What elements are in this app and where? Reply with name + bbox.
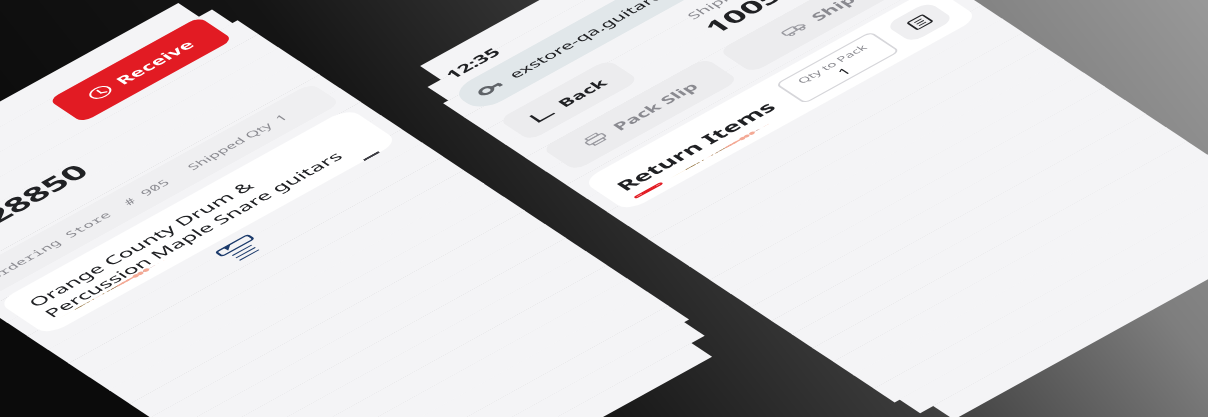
button[interactable]: exstore-qa.guitarcenter.com (450, 0, 778, 112)
staticText: 1 (833, 65, 853, 77)
button[interactable]: Orange County Drum & Percussion Maple Sn… (0, 108, 399, 336)
staticText: 100538487 (696, 0, 875, 39)
staticText: Shipped Qty 1 (183, 111, 292, 172)
staticText: exstore-qa.guitarcenter.com (504, 0, 747, 81)
staticText: Receive (110, 36, 199, 87)
staticText: Ship (806, 0, 860, 24)
button[interactable]: Pack Slip (541, 58, 739, 171)
button[interactable]: Delete (885, 1, 955, 43)
button[interactable]: Receive (48, 17, 233, 123)
staticText: Qty to Pack (794, 42, 870, 85)
staticText: Ordering Store # 905 (0, 176, 174, 282)
staticText: Pack Slip (607, 79, 703, 133)
staticText: Orange County Drum & Percussion Maple Sn… (23, 123, 373, 320)
staticText: 70428850 (0, 158, 97, 260)
button[interactable]: Back (498, 59, 639, 141)
staticText: 12:35 (440, 44, 505, 82)
button[interactable]: Ship (718, 0, 917, 73)
staticText: Back (552, 76, 611, 110)
staticText: Return Items (610, 98, 782, 195)
staticText: Shipment # (683, 0, 782, 22)
